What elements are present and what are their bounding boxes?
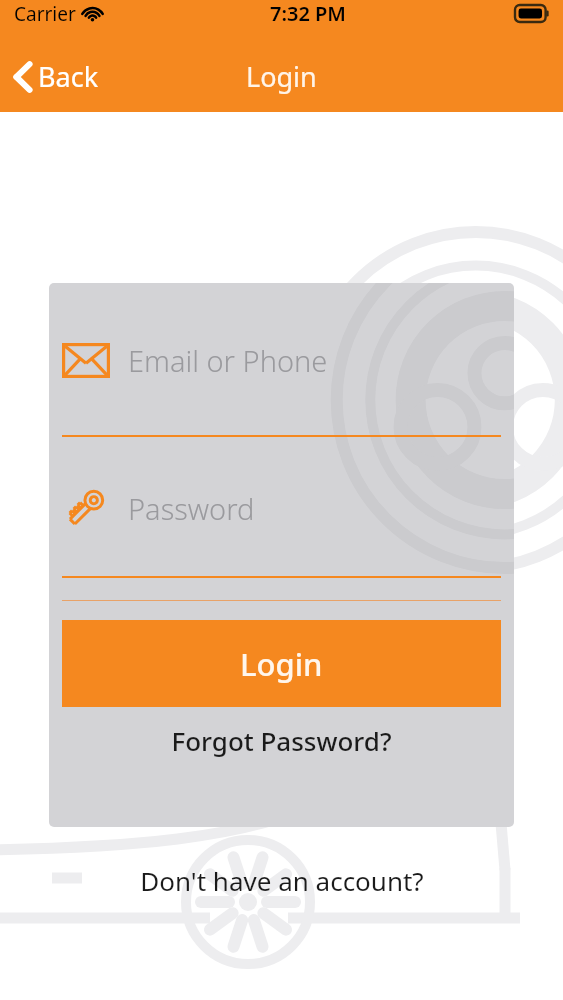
button[interactable]: Forgot Password? [157,717,406,764]
button[interactable]: Login [62,620,501,707]
staticText: Forgot Password? [171,723,392,758]
staticText: Login [246,58,317,95]
staticText: 7:32 PM [270,0,346,27]
button[interactable]: Don't have an account? [124,855,440,906]
button[interactable]: Email or Phone [49,283,514,437]
staticText: Password [128,489,255,528]
staticText: Don't have an account? [140,863,424,898]
button[interactable]: Back [0,50,115,103]
staticText: Back [38,58,99,95]
staticText: Email or Phone [128,341,328,380]
button[interactable]: Password [49,437,514,578]
staticText: Carrier [14,1,76,27]
staticText: Login [240,643,323,685]
